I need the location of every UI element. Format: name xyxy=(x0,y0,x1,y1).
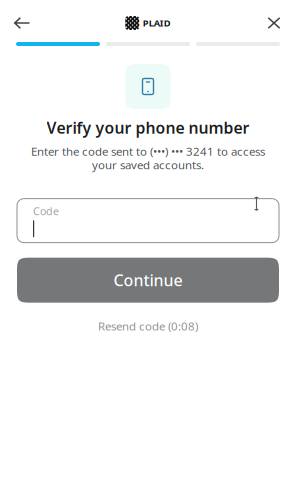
staticText: Resend code (0:08) xyxy=(98,318,198,334)
staticText: Continue xyxy=(113,269,182,291)
staticText: your saved accounts. xyxy=(92,157,204,173)
button[interactable]: Code xyxy=(17,199,279,243)
staticText: Code xyxy=(33,204,59,218)
staticText: Verify your phone number xyxy=(46,117,249,138)
button[interactable]: Back xyxy=(0,6,44,40)
button[interactable]: Close xyxy=(252,6,296,40)
staticText: Enter the code sent to (•••) ••• 3241 to… xyxy=(31,143,265,159)
staticText: PLAID xyxy=(143,17,171,29)
button[interactable]: Resend code (0:08) xyxy=(90,319,206,334)
button[interactable]: Continue xyxy=(17,258,279,303)
